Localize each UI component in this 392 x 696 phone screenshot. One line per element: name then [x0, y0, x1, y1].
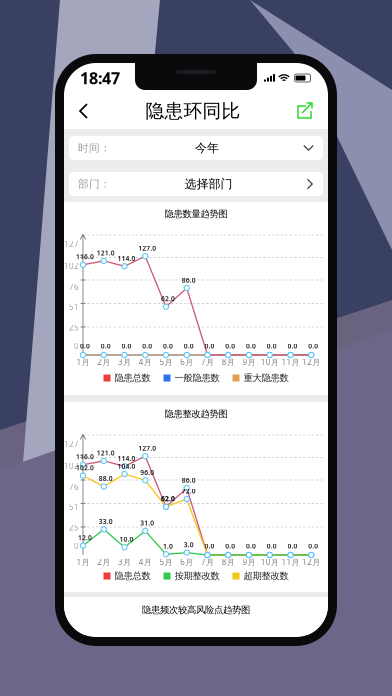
staticText: 隐患整改趋势图	[164, 408, 227, 420]
staticText: 10.0	[119, 535, 133, 544]
staticText: 18:47	[80, 67, 120, 89]
staticText: 31.0	[140, 518, 154, 527]
staticText: 76	[69, 482, 79, 492]
staticText: 0.0	[184, 342, 194, 350]
staticText: 7月	[201, 557, 214, 567]
staticText: 86.0	[182, 476, 196, 485]
staticText: 127	[64, 239, 79, 249]
staticText: 0.0	[80, 342, 90, 350]
staticText: 102	[64, 261, 79, 271]
staticText: 12月	[302, 557, 320, 567]
staticText: 10月	[261, 557, 279, 567]
staticText: 选择部门	[184, 177, 232, 191]
staticText: 116.0	[76, 252, 94, 261]
staticText: 127	[64, 439, 79, 449]
staticText: 时间：	[78, 141, 111, 154]
staticText: 6月	[180, 357, 193, 367]
staticText: 121.0	[97, 248, 115, 257]
staticText: 11月	[281, 357, 299, 367]
staticText: 33.0	[99, 517, 113, 526]
staticText: 2月	[97, 557, 110, 567]
button[interactable]: 部门：	[69, 172, 323, 196]
staticText: 0.0	[267, 542, 277, 550]
staticText: 9月	[242, 357, 255, 367]
staticText: 62.0	[161, 294, 175, 303]
staticText: 0.0	[121, 342, 131, 350]
staticText: 0.0	[142, 342, 152, 350]
staticText: 3月	[118, 357, 131, 367]
staticText: 0.0	[287, 542, 297, 550]
staticText: 8月	[222, 557, 235, 567]
staticText: 5月	[159, 557, 172, 567]
staticText: 0.0	[308, 542, 318, 550]
staticText: 1月	[76, 357, 89, 367]
staticText: 8月	[222, 357, 235, 367]
staticText: 按期整改数	[174, 570, 219, 582]
staticText: 4月	[139, 557, 152, 567]
staticText: 25	[69, 522, 79, 533]
staticText: 127.0	[138, 244, 156, 253]
staticText: 2月	[97, 357, 110, 367]
staticText: 0.0	[246, 542, 256, 550]
staticText: 51	[69, 302, 79, 312]
staticText: 3月	[118, 557, 131, 567]
staticText: 104.0	[117, 462, 135, 471]
staticText: 0.0	[225, 342, 235, 350]
staticText: 6月	[180, 557, 193, 567]
staticText: 0	[74, 541, 79, 551]
staticText: 重大隐患数	[243, 372, 288, 384]
staticText: 0.0	[204, 542, 214, 550]
staticText: 62.0	[161, 494, 175, 503]
staticText: 一般隐患数	[174, 372, 219, 384]
staticText: 1月	[76, 557, 89, 567]
staticText: 0.0	[246, 342, 256, 350]
staticText: 0	[74, 341, 79, 351]
staticText: 隐患数量趋势图	[164, 208, 227, 220]
staticText: 0.0	[225, 542, 235, 550]
button[interactable]: 时间：	[69, 136, 323, 160]
staticText: 12.0	[78, 533, 92, 542]
staticText: 0.0	[163, 342, 173, 350]
staticText: 76	[69, 282, 79, 292]
staticText: 62.0	[161, 494, 175, 503]
staticText: 隐患总数	[114, 372, 150, 384]
staticText: 96.0	[140, 468, 154, 477]
staticText: 0.0	[101, 342, 111, 350]
button[interactable]: Share	[287, 94, 323, 128]
staticText: 1.0	[163, 542, 173, 551]
staticText: 102.0	[76, 463, 94, 472]
staticText: 114.0	[117, 254, 135, 263]
staticText: 9月	[242, 557, 255, 567]
staticText: 隐患总数	[114, 570, 150, 582]
staticText: 0.0	[267, 342, 277, 350]
staticText: 3.0	[184, 540, 194, 549]
staticText: 72.0	[182, 487, 196, 495]
staticText: 88.0	[99, 474, 113, 483]
staticText: 隐患频次较高风险点趋势图	[142, 604, 250, 616]
staticText: 114.0	[117, 454, 135, 463]
staticText: 4月	[139, 357, 152, 367]
staticText: 121.0	[97, 448, 115, 457]
staticText: 127.0	[138, 444, 156, 453]
staticText: 25	[69, 322, 79, 333]
staticText: 11月	[281, 557, 299, 567]
staticText: 5月	[159, 357, 172, 367]
staticText: 部门：	[78, 177, 111, 190]
button[interactable]: Back	[69, 94, 99, 128]
staticText: 今年	[195, 141, 219, 155]
staticText: 102	[64, 461, 79, 471]
staticText: 12月	[302, 357, 320, 367]
staticText: 超期整改数	[243, 570, 288, 582]
staticText: 51	[69, 502, 79, 512]
staticText: 116.0	[76, 452, 94, 461]
staticText: 0.0	[204, 342, 214, 350]
staticText: 86.0	[182, 276, 196, 285]
staticText: 0.0	[287, 342, 297, 350]
staticText: 0.0	[308, 342, 318, 350]
staticText: 10月	[261, 357, 279, 367]
staticText: 隐患环同比	[145, 99, 240, 122]
staticText: 7月	[201, 357, 214, 367]
